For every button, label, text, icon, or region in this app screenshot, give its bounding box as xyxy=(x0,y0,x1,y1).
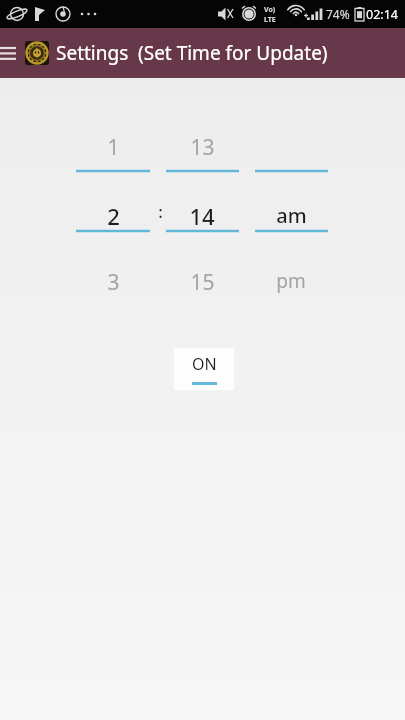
staticText: 13 xyxy=(190,133,215,162)
button[interactable]: App logo xyxy=(25,41,49,65)
staticText: 3 xyxy=(107,268,120,297)
staticText: 74% xyxy=(326,6,350,22)
staticText: Vo) xyxy=(264,5,276,15)
staticText: (Set Time for Update) xyxy=(138,40,328,66)
button[interactable]: AM or PM xyxy=(255,120,295,280)
staticText: 02:14 xyxy=(366,6,398,23)
staticText: 15 xyxy=(190,268,215,297)
staticText: ON xyxy=(192,353,217,375)
button[interactable]: ON xyxy=(173,347,235,391)
button[interactable]: Open navigation menu xyxy=(0,33,19,73)
staticText: Settings xyxy=(56,40,129,66)
staticText: LTE xyxy=(264,15,276,25)
button[interactable]: Minute xyxy=(166,120,252,280)
staticText: : xyxy=(158,200,163,223)
staticText: 14 xyxy=(189,201,215,231)
button[interactable]: Hour xyxy=(76,120,252,280)
staticText: 2 xyxy=(107,201,120,231)
staticText: pm xyxy=(276,268,306,294)
staticText: am xyxy=(276,202,307,229)
staticText: 1 xyxy=(107,133,120,162)
